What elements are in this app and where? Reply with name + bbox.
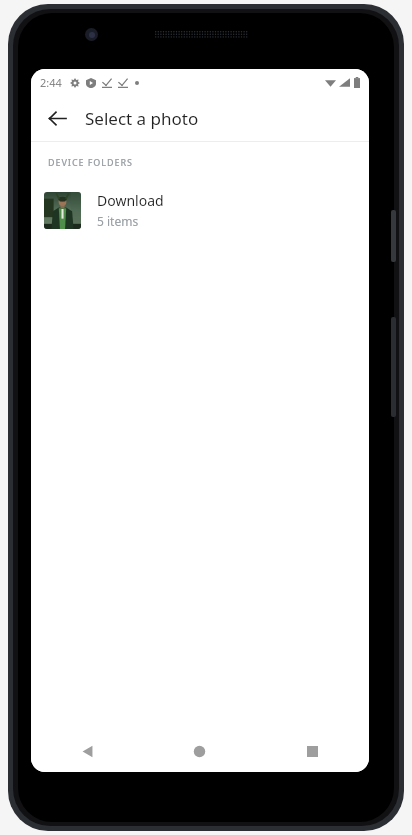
button[interactable]: Back xyxy=(37,98,77,138)
button[interactable]: Download xyxy=(31,182,369,238)
staticText: Download xyxy=(97,191,164,210)
staticText: 5 items xyxy=(97,213,139,229)
button[interactable]: Recent apps xyxy=(256,730,369,772)
staticText: Select a photo xyxy=(85,107,199,130)
button[interactable]: Home xyxy=(143,730,256,772)
button[interactable]: Back xyxy=(31,730,143,772)
staticText: 2:44 xyxy=(40,75,62,90)
staticText: DEVICE FOLDERS xyxy=(48,156,133,168)
